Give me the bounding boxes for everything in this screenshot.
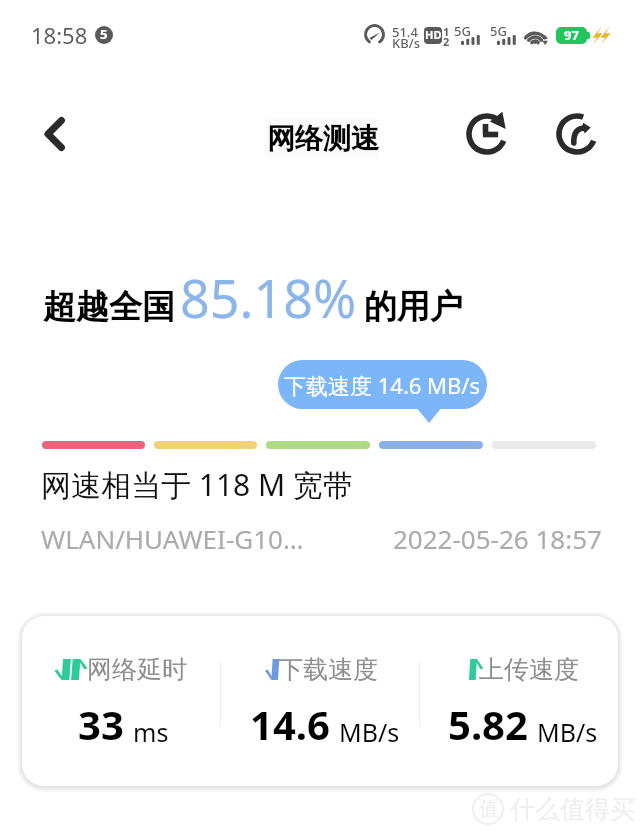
staticText: MB/s	[339, 715, 400, 749]
staticText: 5.82	[448, 697, 528, 751]
staticText: 值	[479, 797, 498, 821]
button[interactable]: Share	[556, 113, 598, 155]
staticText: 网络测速	[267, 121, 379, 156]
staticText: WLAN/HUAWEI-G10…	[41, 521, 304, 556]
staticText: 什么值得买	[510, 794, 635, 825]
button[interactable]: 上传速度	[420, 616, 618, 786]
staticText: 14.6	[250, 697, 330, 751]
button[interactable]: History	[466, 113, 508, 155]
staticText: 85.18%	[180, 262, 357, 333]
button[interactable]: 网络延时	[22, 616, 221, 786]
button[interactable]: Back	[24, 110, 72, 158]
staticText: 下载速度	[278, 654, 378, 685]
staticText: 18:58	[31, 20, 88, 50]
staticText: 2022-05-26 18:57	[393, 521, 602, 556]
staticText: 网络延时	[87, 654, 187, 685]
staticText: 33	[78, 697, 124, 751]
staticText: 2	[443, 34, 450, 49]
staticText: 的用户	[364, 286, 463, 328]
staticText: 网速相当于 118 M 宽带	[41, 464, 354, 505]
staticText: 1	[443, 24, 450, 39]
staticText: 超越全国	[43, 286, 175, 328]
staticText: 97	[564, 27, 579, 43]
staticText: 5G	[490, 22, 507, 40]
staticText: 5	[100, 25, 108, 43]
staticText: 上传速度	[479, 654, 579, 685]
staticText: KB/s	[392, 34, 421, 52]
staticText: 5G	[454, 22, 471, 40]
staticText: MB/s	[537, 715, 598, 749]
button[interactable]: 下载速度	[221, 616, 420, 786]
staticText: 51.4	[392, 23, 418, 41]
staticText: HD	[425, 27, 442, 42]
staticText: 下载速度 14.6 MB/s	[284, 370, 481, 400]
staticText: ms	[133, 715, 169, 749]
